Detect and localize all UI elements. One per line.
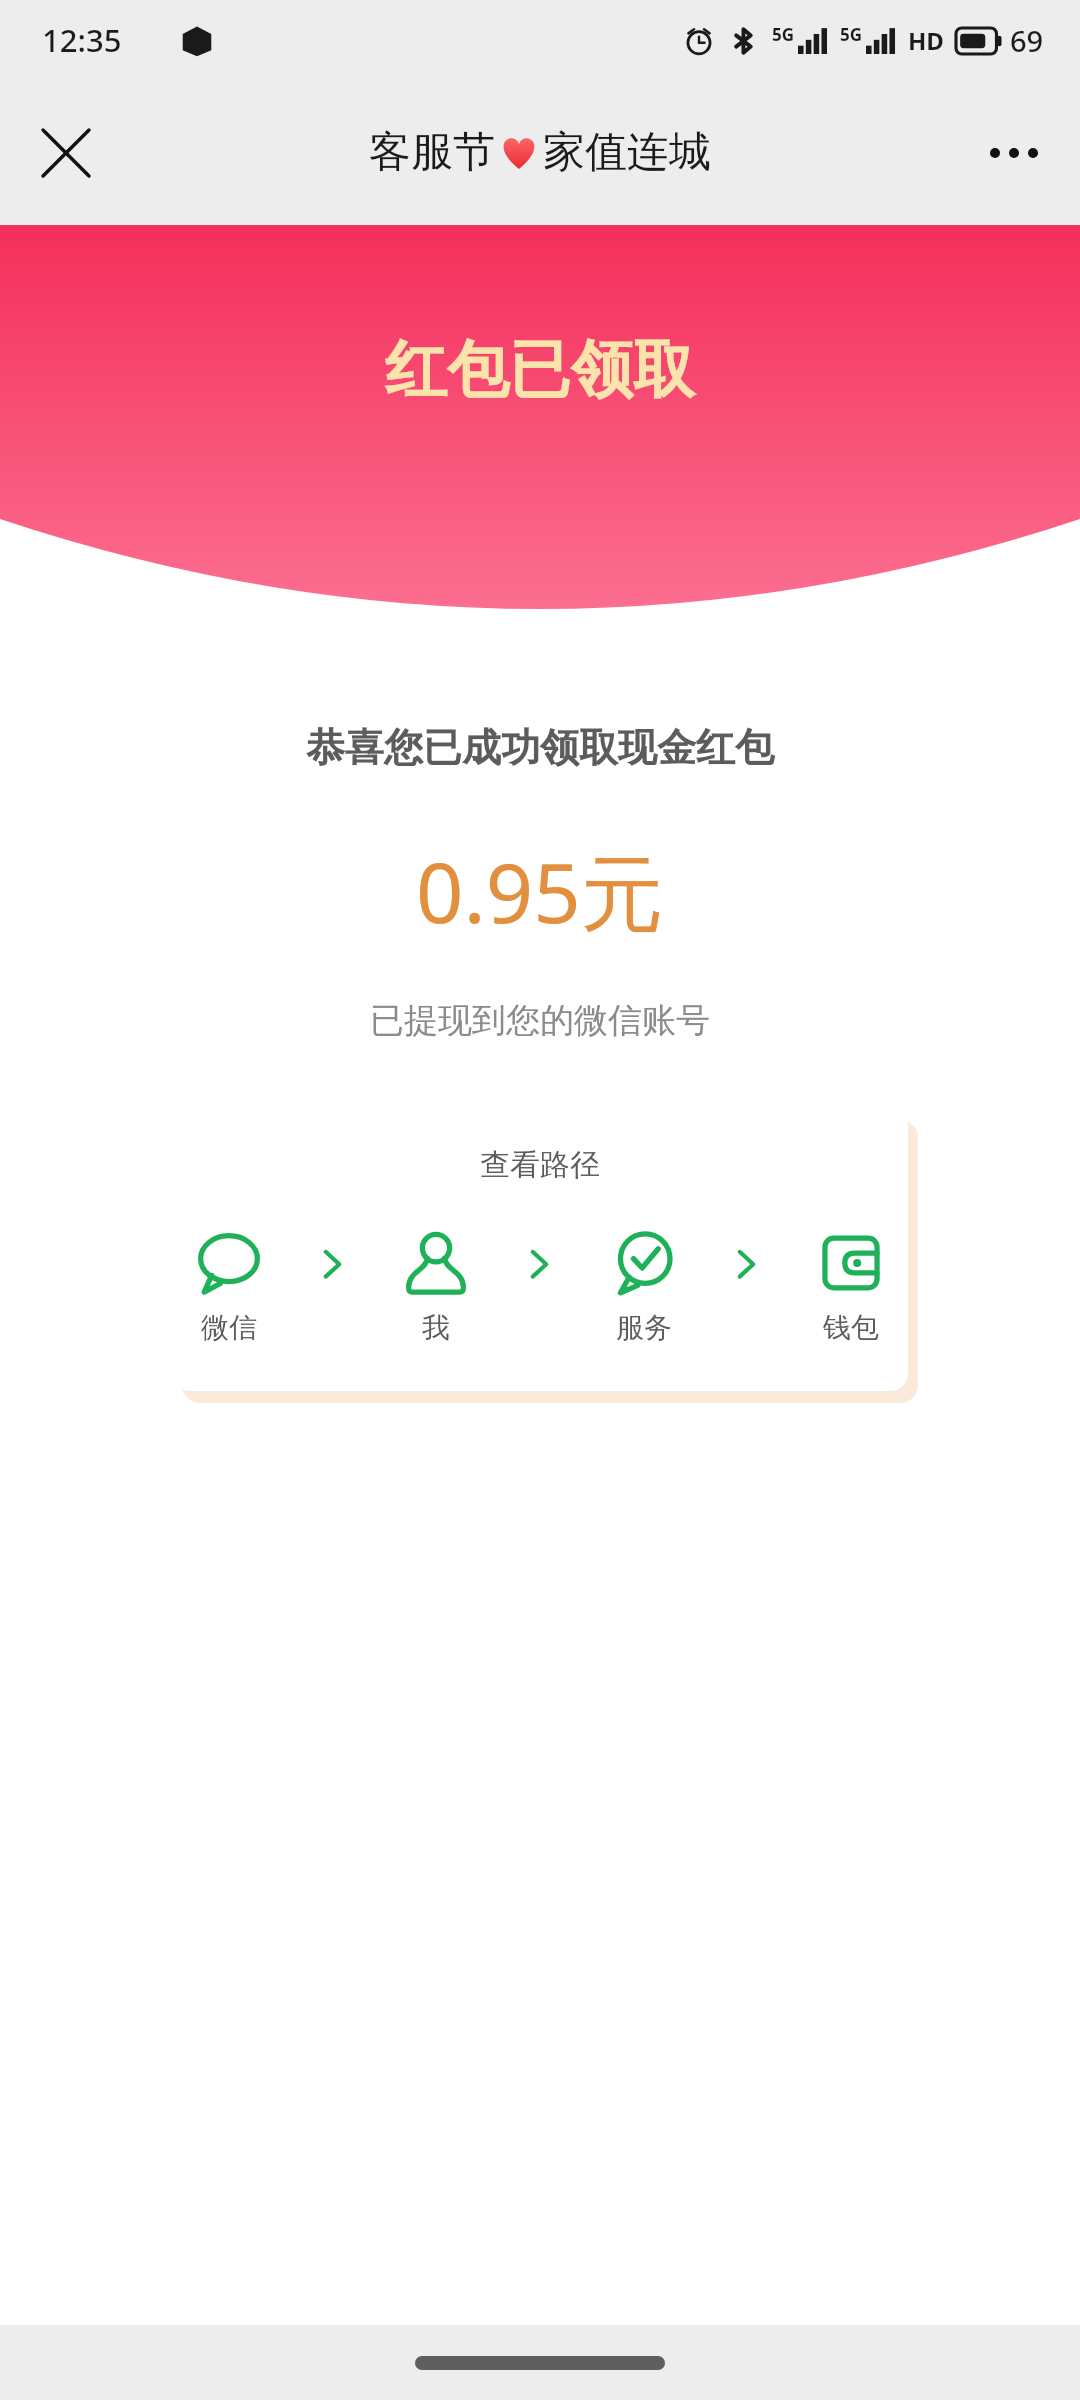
button[interactable]: Home: [415, 2356, 665, 2370]
staticText: 家值连城: [543, 126, 711, 179]
staticText: HD: [908, 24, 944, 57]
staticText: 微信: [201, 1310, 257, 1345]
staticText: 服务: [616, 1310, 672, 1345]
staticText: 我: [422, 1310, 450, 1345]
staticText: 0.95元: [416, 834, 664, 947]
staticText: 已提现到您的微信账号: [370, 999, 710, 1042]
staticText: 查看路径: [480, 1146, 600, 1184]
button[interactable]: 查看路径: [172, 1108, 908, 1391]
staticText: 5G: [772, 23, 795, 46]
staticText: 12:35: [42, 19, 122, 61]
button[interactable]: Close: [18, 105, 114, 201]
staticText: 69: [1010, 21, 1044, 60]
staticText: 红包已领取: [385, 331, 695, 409]
staticText: 客服节: [369, 126, 495, 179]
button[interactable]: More options: [966, 105, 1062, 201]
staticText: 5G: [840, 23, 863, 46]
staticText: 钱包: [823, 1310, 879, 1345]
staticText: 恭喜您已成功领取现金红包: [306, 723, 774, 772]
